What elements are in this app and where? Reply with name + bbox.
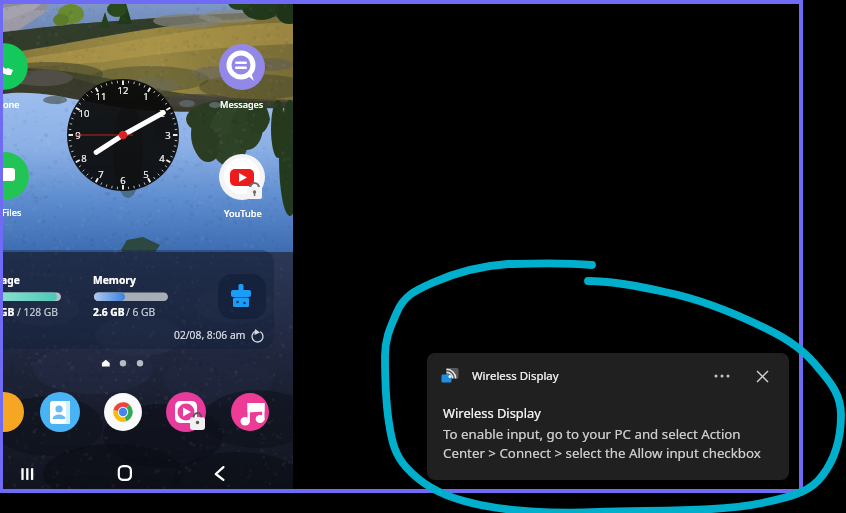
staticText: age — [3, 273, 20, 287]
button[interactable]: Chrome — [103, 392, 143, 432]
staticText: 11 — [93, 90, 109, 102]
staticText: YouTube — [224, 207, 262, 220]
button[interactable]: Phone — [3, 43, 28, 90]
staticText: 5 — [138, 168, 154, 180]
button[interactable]: Back — [203, 458, 237, 488]
staticText: 2.6 GB — [93, 305, 125, 319]
button[interactable]: More options — [707, 363, 737, 389]
staticText: Wireless Display — [443, 404, 541, 422]
staticText: 9 — [70, 129, 86, 141]
staticText: 12 — [115, 84, 131, 96]
button[interactable] — [3, 250, 274, 349]
staticText: Wireless Display — [472, 368, 559, 384]
button[interactable]: App — [3, 392, 24, 432]
staticText: 02/08, 8:06 am — [174, 328, 246, 342]
staticText: 6 — [115, 174, 131, 186]
staticText: 8 — [76, 152, 92, 164]
button[interactable]: Recents — [8, 460, 46, 489]
button[interactable]: Contacts — [40, 392, 80, 432]
button[interactable]: Files — [3, 152, 29, 200]
button[interactable]: Close — [749, 363, 777, 389]
staticText: 7 — [93, 168, 109, 180]
button[interactable]: Home — [107, 458, 141, 488]
staticText: / 128 GB — [17, 305, 59, 319]
staticText: 3 — [160, 129, 176, 141]
staticText: Files — [3, 206, 22, 219]
button[interactable]: Wireless Display — [427, 353, 789, 480]
staticText: GB — [3, 305, 15, 319]
button[interactable]: Music — [230, 392, 270, 432]
button[interactable]: Video player — [166, 392, 206, 432]
button[interactable]: YouTube — [219, 154, 265, 200]
staticText: Memory — [93, 273, 136, 287]
staticText: To enable input, go to your PC and selec… — [443, 425, 761, 462]
staticText: 4 — [154, 152, 170, 164]
staticText: 10 — [76, 107, 92, 119]
button[interactable]: Clock widget — [3, 4, 293, 489]
staticText: 1 — [138, 90, 154, 102]
staticText: / 6 GB — [126, 305, 156, 319]
staticText: one — [3, 98, 20, 111]
staticText: 2 — [154, 107, 170, 119]
staticText: Messages — [220, 98, 264, 111]
button[interactable]: Messages — [219, 44, 265, 90]
